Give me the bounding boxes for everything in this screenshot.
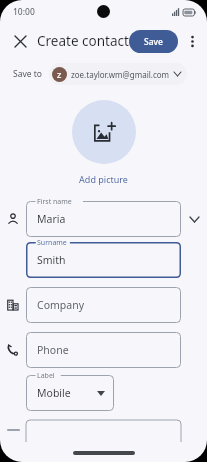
staticText: Create contact <box>37 32 129 50</box>
staticText: Phone <box>37 343 69 357</box>
button[interactable]: Close <box>5 26 35 56</box>
button[interactable]: Z <box>49 63 187 85</box>
button[interactable]: Label <box>26 375 114 411</box>
button[interactable]: First name <box>26 201 181 237</box>
staticText: Company <box>37 298 84 312</box>
staticText: Label <box>37 371 55 381</box>
staticText: Smith <box>37 253 66 267</box>
button[interactable]: Company <box>26 287 181 323</box>
staticText: Mobile <box>37 386 71 400</box>
staticText: First name <box>37 197 72 207</box>
staticText: Surname <box>37 238 67 248</box>
staticText: Save to <box>13 68 42 80</box>
staticText: Maria <box>37 212 66 226</box>
staticText: zoe.taylor.wm@gmail.com <box>71 69 170 80</box>
button[interactable] <box>26 420 181 442</box>
staticText: Add picture <box>79 173 128 185</box>
button[interactable]: Save <box>129 30 178 53</box>
staticText: Z <box>57 70 62 80</box>
button[interactable]: Expand name fields <box>181 206 207 232</box>
button[interactable]: Surname <box>26 242 181 278</box>
staticText: Save <box>144 36 163 48</box>
button[interactable]: Phone <box>26 332 181 368</box>
staticText: 10:00 <box>13 6 35 18</box>
button[interactable]: Add picture <box>72 100 136 164</box>
button[interactable]: More options <box>181 28 204 54</box>
